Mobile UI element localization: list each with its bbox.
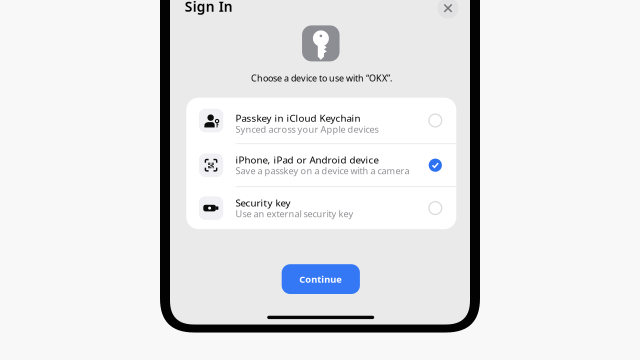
button[interactable]: Security key: [186, 187, 456, 229]
button[interactable]: Passkey in iCloud Keychain: [186, 98, 456, 143]
staticText: Save a passkey on a device with a camera: [235, 164, 409, 177]
staticText: Sign In: [185, 0, 233, 16]
staticText: Security key: [235, 196, 290, 209]
button[interactable]: iPhone, iPad or Android device: [186, 144, 456, 186]
staticText: Continue: [299, 273, 342, 285]
button[interactable]: Continue: [282, 264, 360, 294]
staticText: iPhone, iPad or Android device: [235, 153, 378, 166]
staticText: Passkey in iCloud Keychain: [235, 111, 360, 125]
staticText: Use an external security key: [235, 207, 353, 220]
button[interactable]: Close: [437, 0, 458, 19]
staticText: Choose a device to use with “OKX”.: [251, 72, 392, 84]
staticText: Synced across your Apple devices: [235, 123, 378, 135]
